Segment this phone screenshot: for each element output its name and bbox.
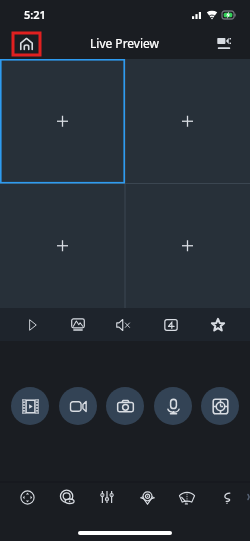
button[interactable]: Mute (110, 308, 136, 341)
button[interactable]: Microphone (154, 387, 192, 425)
staticText: 5:21 (24, 7, 46, 22)
staticText: Live Preview (90, 35, 160, 51)
button[interactable]: Focus (47, 482, 87, 512)
button[interactable]: Snapshot (106, 387, 144, 425)
button[interactable]: Direction (7, 482, 47, 512)
button[interactable]: PTZ control (201, 387, 239, 425)
button[interactable]: More (207, 482, 247, 512)
button[interactable]: Image adjust (87, 482, 127, 512)
button[interactable]: More options (247, 482, 250, 512)
button[interactable]: Layout (158, 308, 184, 341)
button[interactable]: Wiper (167, 482, 207, 512)
button[interactable]: Snapshot (65, 308, 91, 341)
button[interactable]: Spotlight (127, 482, 167, 512)
button[interactable]: Play (19, 308, 45, 341)
button[interactable]: Favorite (205, 308, 231, 341)
button[interactable]: Home (13, 33, 40, 55)
button[interactable]: Recordings (11, 387, 49, 425)
button[interactable]: Record video (59, 387, 97, 425)
button[interactable]: Camera list (212, 33, 236, 54)
